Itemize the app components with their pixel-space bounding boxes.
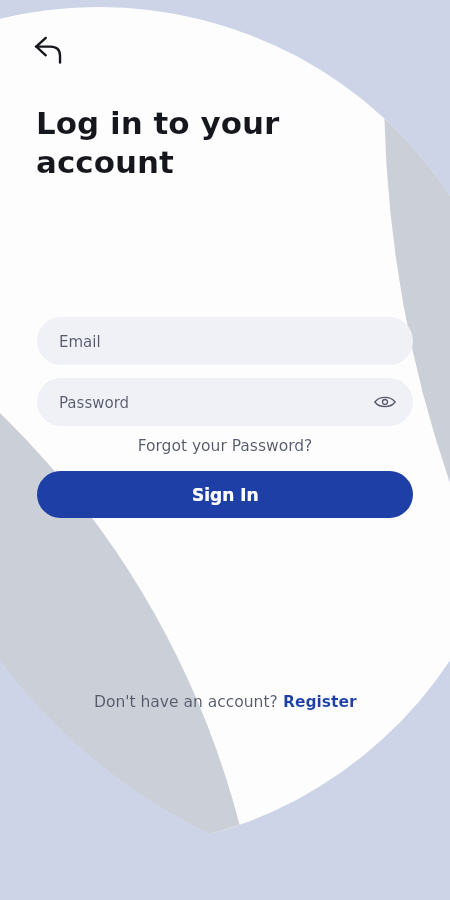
staticText: Password <box>59 394 130 411</box>
staticText: Email <box>59 333 101 350</box>
button[interactable]: Back <box>24 24 72 72</box>
button[interactable]: Email <box>37 317 413 365</box>
button[interactable]: Show password <box>369 386 401 418</box>
button[interactable]: Sign In <box>37 471 413 518</box>
button[interactable]: Register <box>283 693 357 711</box>
button[interactable]: Password <box>37 378 413 426</box>
staticText: Sign In <box>192 485 259 505</box>
staticText: Log in to your account <box>36 105 280 180</box>
staticText: Don't have an account? <box>94 693 283 711</box>
staticText: Forgot your Password? <box>0 437 450 455</box>
